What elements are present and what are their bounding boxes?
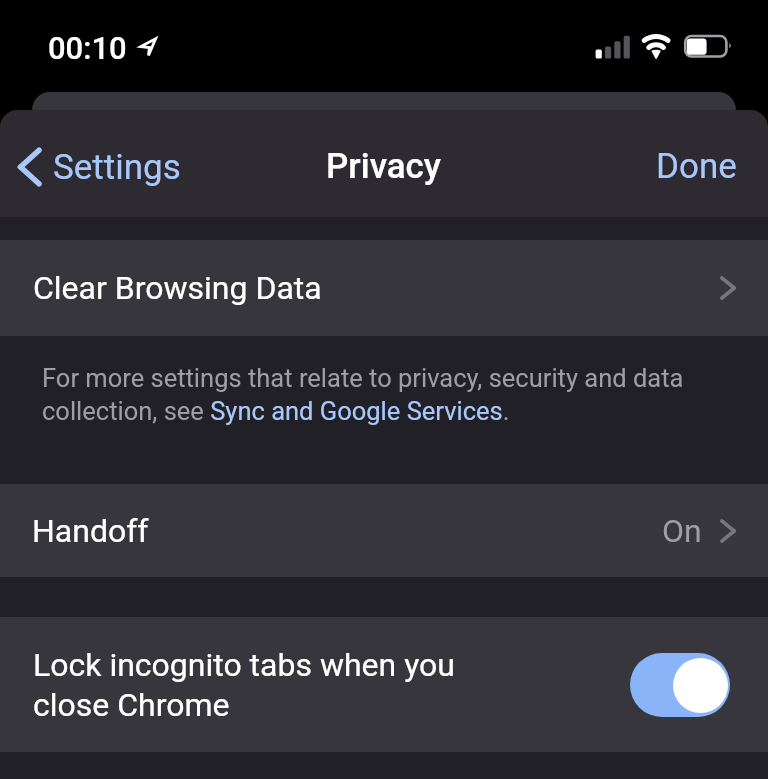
button[interactable]: Clear Browsing Data — [0, 240, 768, 336]
staticText: Done — [656, 146, 737, 187]
staticText: Lock incognito tabs when you close Chrom… — [33, 646, 473, 724]
staticText: For more settings that relate to privacy… — [42, 363, 728, 426]
staticText: Clear Browsing Data — [33, 269, 322, 307]
staticText: Handoff — [32, 512, 149, 550]
staticText: On — [662, 512, 702, 550]
staticText: Privacy — [326, 146, 442, 187]
staticText: 00:10 — [48, 30, 127, 66]
staticText: Settings — [53, 147, 181, 188]
button[interactable]: Lock incognito tabs when you close Chrom… — [0, 617, 768, 752]
button[interactable]: Lock incognito tabs when you close Chrom… — [630, 653, 730, 717]
button[interactable]: Done — [625, 128, 768, 199]
button[interactable]: Handoff — [0, 484, 768, 577]
other: Location services active — [139, 37, 158, 57]
button[interactable]: Settings — [0, 130, 191, 198]
other: Cellular signal, Wi-Fi and battery — [0, 0, 768, 92]
